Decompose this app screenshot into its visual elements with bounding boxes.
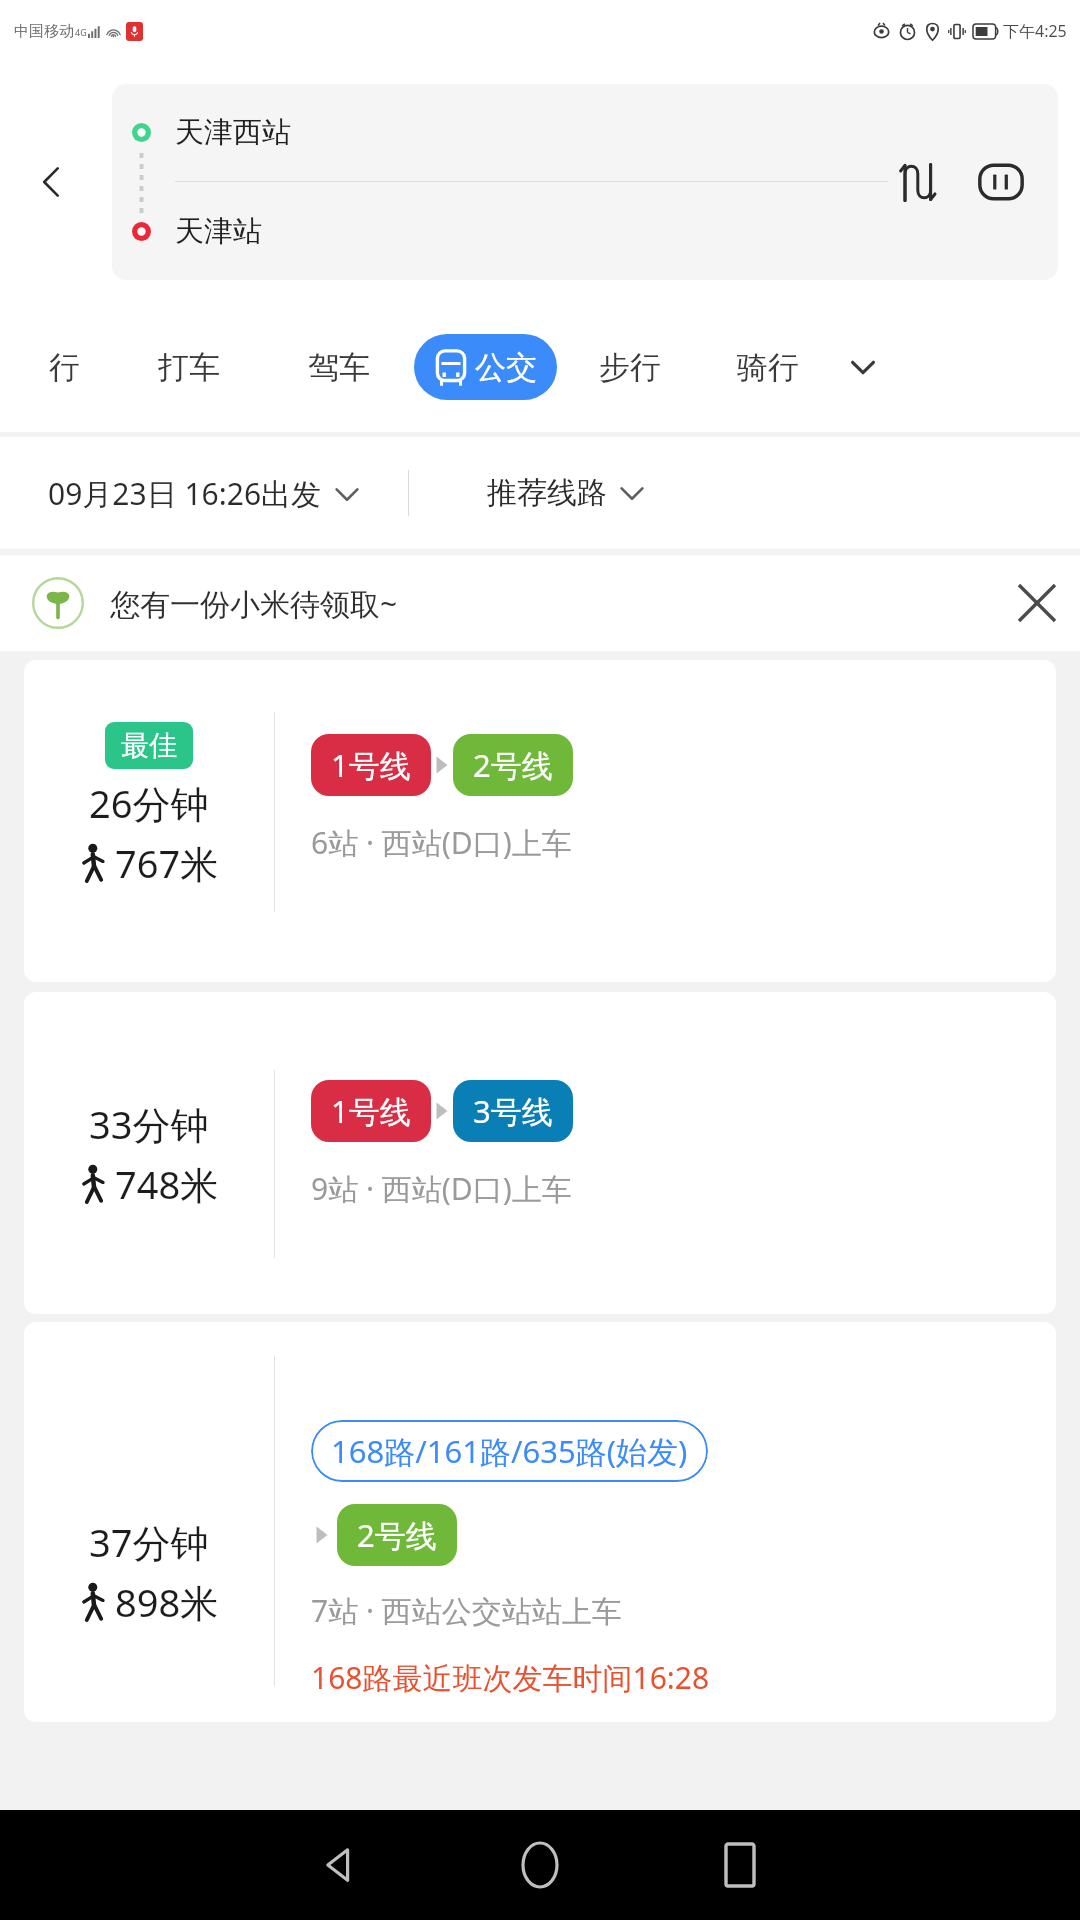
button[interactable]: More modes (833, 337, 893, 397)
button[interactable]: 驾车 (264, 331, 414, 403)
staticText: 168路/161路/635路(始发) (331, 1430, 688, 1472)
button[interactable]: Close promotion (994, 560, 1080, 646)
staticText: 天津站 (175, 213, 262, 250)
staticText: 767米 (115, 837, 219, 889)
button[interactable]: Back (22, 152, 82, 212)
staticText: 骑行 (737, 348, 799, 387)
staticText: 09月23日 16:26出发 (48, 473, 322, 514)
staticText: 公交 (475, 348, 537, 387)
button[interactable]: 行 (14, 331, 114, 403)
staticText: 4G (75, 26, 87, 38)
button[interactable]: Swap origin and destination (886, 151, 948, 213)
button[interactable]: 骑行 (703, 331, 833, 403)
button[interactable]: 09月23日 16:26出发 (48, 473, 360, 514)
button[interactable]: 最佳 (24, 660, 1056, 982)
staticText: 33分钟 (89, 1098, 209, 1150)
staticText: 2号线 (473, 744, 553, 786)
button[interactable]: 天津西站 (112, 84, 1058, 181)
button[interactable]: 打车 (114, 331, 264, 403)
staticText: 26分钟 (89, 777, 209, 829)
staticText: 2号线 (357, 1514, 437, 1556)
staticText: 7站 · 西站公交站站上车 (311, 1590, 622, 1631)
button[interactable]: 您有一份小米待领取~ (0, 555, 1080, 651)
staticText: 1号线 (331, 744, 411, 786)
staticText: 步行 (599, 348, 661, 387)
button[interactable]: Back (240, 1810, 440, 1920)
staticText: 898米 (115, 1576, 219, 1628)
button[interactable]: 天津站 (112, 182, 1058, 280)
button[interactable]: 37分钟 (24, 1322, 1056, 1722)
button[interactable]: 推荐线路 (487, 474, 645, 512)
staticText: 最佳 (121, 728, 177, 763)
staticText: 天津西站 (175, 114, 291, 151)
staticText: 748米 (115, 1158, 219, 1210)
staticText: 168路最近班次发车时间16:28 (311, 1657, 710, 1698)
button[interactable]: 公交 (434, 334, 537, 400)
button[interactable]: Recent apps (640, 1810, 840, 1920)
staticText: 驾车 (308, 348, 370, 387)
staticText: 中国移动 (14, 22, 74, 41)
button[interactable]: Home (440, 1810, 640, 1920)
staticText: 下午4:25 (1003, 20, 1067, 42)
staticText: 37分钟 (89, 1516, 209, 1568)
staticText: 行 (49, 348, 80, 387)
button[interactable]: 步行 (557, 331, 703, 403)
staticText: 打车 (158, 348, 220, 387)
button[interactable]: Map view (970, 151, 1032, 213)
staticText: 1号线 (331, 1090, 411, 1132)
staticText: 3号线 (473, 1090, 553, 1132)
staticText: 推荐线路 (487, 474, 607, 512)
staticText: 6站 · 西站(D口)上车 (311, 822, 572, 863)
staticText: 9站 · 西站(D口)上车 (311, 1168, 572, 1209)
button[interactable]: 33分钟 (24, 992, 1056, 1314)
staticText: 您有一份小米待领取~ (110, 583, 398, 624)
